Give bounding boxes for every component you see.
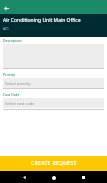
staticText: Description — [3, 38, 22, 43]
staticText: CREATE REQUEST — [31, 160, 77, 167]
staticText: Select cost code — [5, 101, 35, 106]
staticText: Air Conditioning Unit Main Office — [3, 17, 81, 24]
button[interactable]: Home — [48, 172, 59, 183]
button[interactable]: Select priority — [3, 78, 104, 88]
button[interactable]: CREATE REQUEST — [0, 156, 107, 172]
staticText: Cost Code — [3, 92, 20, 97]
button[interactable]: Back — [19, 172, 30, 183]
button[interactable]: Navigate up — [0, 2, 13, 15]
staticText: AC1 — [3, 27, 9, 31]
staticText: Priority — [3, 72, 15, 77]
staticText: Select priority — [5, 81, 31, 86]
button[interactable]: Select cost code — [3, 98, 104, 108]
button[interactable]: Recent apps — [78, 172, 89, 183]
